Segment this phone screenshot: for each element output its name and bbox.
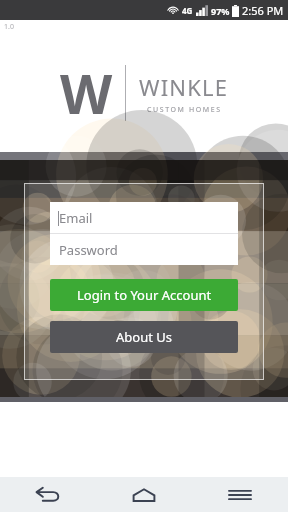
button[interactable]: Recent apps [192, 477, 288, 512]
staticText: About Us [116, 328, 173, 346]
button[interactable]: Login to Your Account [50, 279, 238, 311]
staticText: 4G [182, 5, 193, 16]
staticText: WINKLE [139, 72, 229, 102]
button[interactable]: Email [50, 202, 238, 233]
button[interactable]: About Us [50, 321, 238, 353]
button[interactable]: Back [0, 477, 96, 512]
staticText: 97% [211, 5, 230, 17]
staticText: W [60, 56, 113, 130]
staticText: 1.0 [4, 22, 14, 32]
button[interactable]: Password [50, 234, 238, 265]
staticText: CUSTOM HOMES [147, 105, 222, 115]
staticText: 2:56 PM [242, 3, 284, 18]
staticText: Login to Your Account [77, 286, 212, 304]
staticText: Email [59, 209, 93, 227]
button[interactable]: Home [96, 477, 192, 512]
staticText: Password [59, 241, 118, 259]
